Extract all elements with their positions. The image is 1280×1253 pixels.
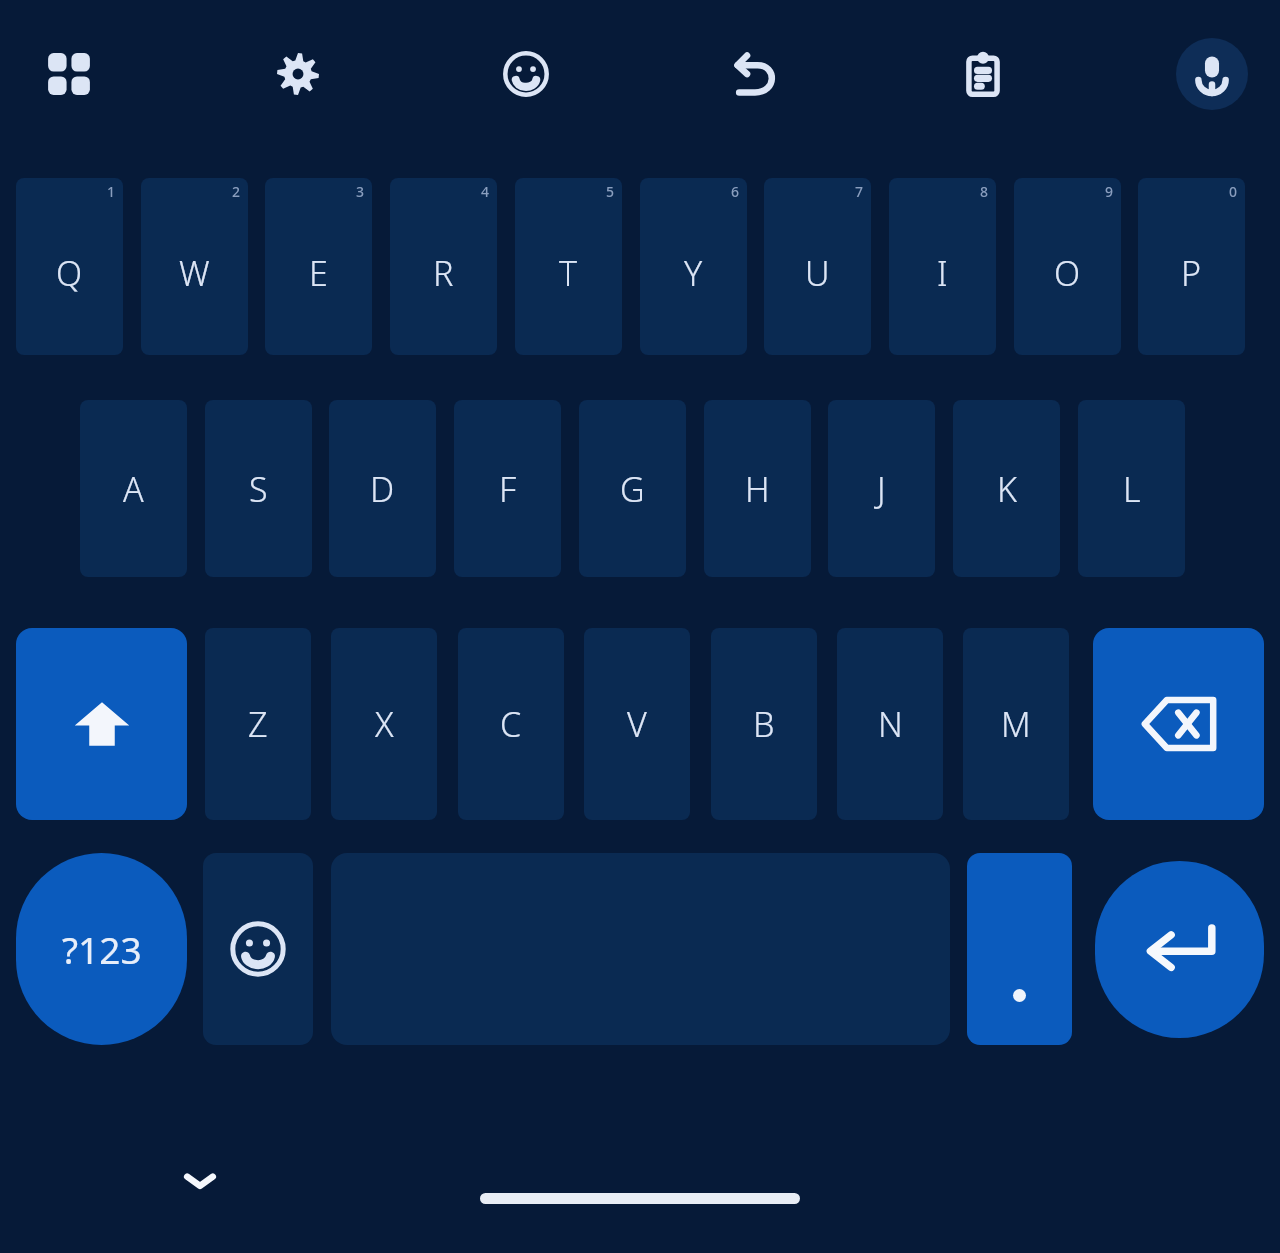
button[interactable]: Undo bbox=[719, 38, 791, 110]
staticText: D bbox=[370, 466, 395, 512]
button[interactable]: K bbox=[953, 400, 1060, 577]
button[interactable]: L bbox=[1078, 400, 1185, 577]
button[interactable]: 3 bbox=[265, 178, 372, 355]
staticText: C bbox=[500, 701, 522, 747]
button[interactable]: 5 bbox=[515, 178, 622, 355]
button[interactable]: 6 bbox=[640, 178, 747, 355]
staticText: 7 bbox=[764, 182, 863, 201]
staticText: 1 bbox=[16, 182, 115, 201]
staticText: Z bbox=[248, 701, 268, 747]
button[interactable]: Emoji keyboard bbox=[203, 853, 313, 1045]
staticText: A bbox=[123, 466, 144, 512]
button[interactable]: 7 bbox=[764, 178, 871, 355]
button[interactable]: Keyboard layouts bbox=[33, 38, 105, 110]
button[interactable]: Shift bbox=[16, 628, 187, 820]
button[interactable]: Hide keyboard bbox=[176, 1157, 224, 1205]
button[interactable]: Backspace bbox=[1093, 628, 1264, 820]
staticText: V bbox=[627, 701, 647, 747]
staticText: 9 bbox=[1014, 182, 1113, 201]
staticText: 6 bbox=[640, 182, 739, 201]
button[interactable]: F bbox=[454, 400, 561, 577]
button[interactable]: V bbox=[584, 628, 690, 820]
staticText: R bbox=[433, 250, 454, 296]
staticText: T bbox=[559, 250, 578, 296]
button[interactable]: 1 bbox=[16, 178, 123, 355]
button[interactable]: X bbox=[331, 628, 437, 820]
staticText: O bbox=[1054, 250, 1081, 296]
staticText: U bbox=[805, 250, 830, 296]
button[interactable]: Z bbox=[205, 628, 311, 820]
staticText: M bbox=[1001, 701, 1031, 747]
button[interactable]: Settings bbox=[262, 38, 334, 110]
staticText: F bbox=[499, 466, 517, 512]
staticText: ?123 bbox=[62, 924, 142, 974]
button[interactable]: G bbox=[579, 400, 686, 577]
button[interactable]: S bbox=[205, 400, 312, 577]
button[interactable]: 8 bbox=[889, 178, 996, 355]
button[interactable]: N bbox=[837, 628, 943, 820]
staticText: L bbox=[1123, 466, 1141, 512]
staticText: 2 bbox=[141, 182, 240, 201]
staticText: 4 bbox=[390, 182, 489, 201]
button[interactable]: Enter bbox=[1095, 861, 1264, 1038]
button[interactable]: H bbox=[704, 400, 811, 577]
button[interactable]: ?123 bbox=[16, 853, 187, 1045]
button[interactable]: B bbox=[711, 628, 817, 820]
staticText: W bbox=[179, 250, 210, 296]
staticText: I bbox=[937, 250, 948, 296]
button[interactable]: D bbox=[329, 400, 436, 577]
staticText: Q bbox=[56, 250, 83, 296]
staticText: K bbox=[997, 466, 1017, 512]
button[interactable]: 2 bbox=[141, 178, 248, 355]
button[interactable]: 9 bbox=[1014, 178, 1121, 355]
button[interactable]: Clipboard bbox=[947, 38, 1019, 110]
staticText: N bbox=[878, 701, 903, 747]
staticText: E bbox=[309, 250, 328, 296]
staticText: J bbox=[877, 466, 886, 512]
button[interactable]: Voice input bbox=[1176, 38, 1248, 110]
staticText: 5 bbox=[515, 182, 614, 201]
staticText: 8 bbox=[889, 182, 988, 201]
button[interactable]: C bbox=[458, 628, 564, 820]
button[interactable]: 4 bbox=[390, 178, 497, 355]
button[interactable]: Period bbox=[967, 853, 1072, 1045]
staticText: G bbox=[620, 466, 645, 512]
button[interactable]: A bbox=[80, 400, 187, 577]
staticText: 0 bbox=[1138, 182, 1237, 201]
staticText: 3 bbox=[265, 182, 364, 201]
button[interactable]: 0 bbox=[1138, 178, 1245, 355]
staticText: S bbox=[249, 466, 268, 512]
button[interactable]: Emoji bbox=[490, 38, 562, 110]
staticText: H bbox=[745, 466, 770, 512]
staticText: P bbox=[1181, 250, 1202, 296]
button[interactable]: J bbox=[828, 400, 935, 577]
staticText: B bbox=[753, 701, 775, 747]
staticText: X bbox=[375, 701, 394, 747]
staticText: Y bbox=[684, 250, 703, 296]
button[interactable]: M bbox=[963, 628, 1069, 820]
